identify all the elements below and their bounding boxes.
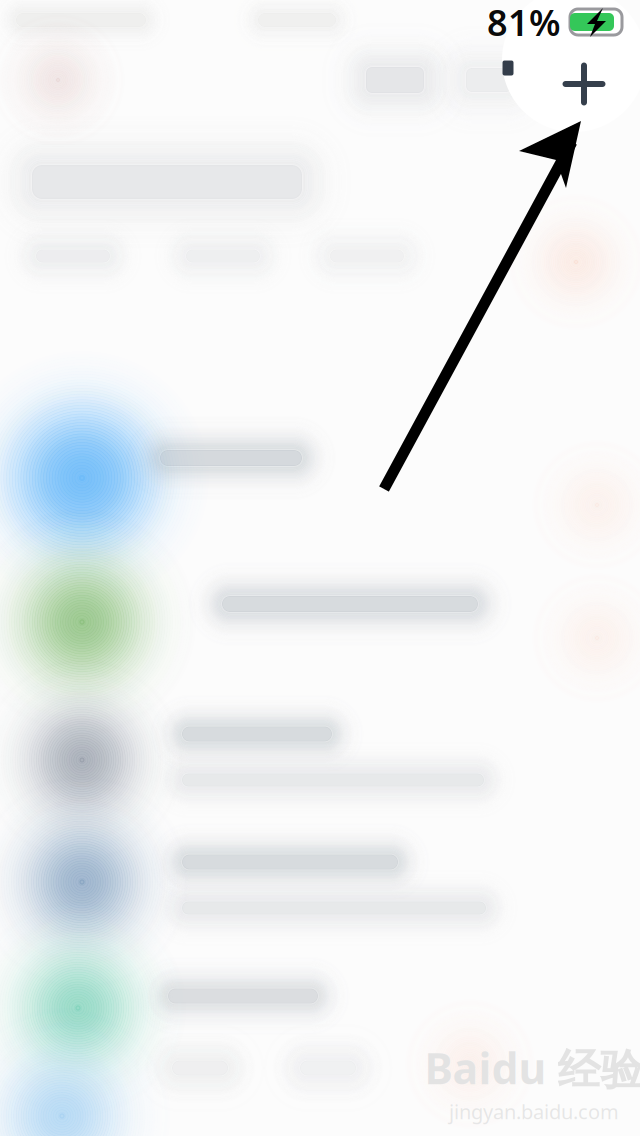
staticText: jingyan.baidu.com bbox=[449, 1098, 619, 1125]
staticText: 81% bbox=[487, 0, 561, 46]
staticText: Baidu 经验 bbox=[424, 1039, 640, 1096]
button[interactable]: New chat bbox=[549, 49, 619, 119]
